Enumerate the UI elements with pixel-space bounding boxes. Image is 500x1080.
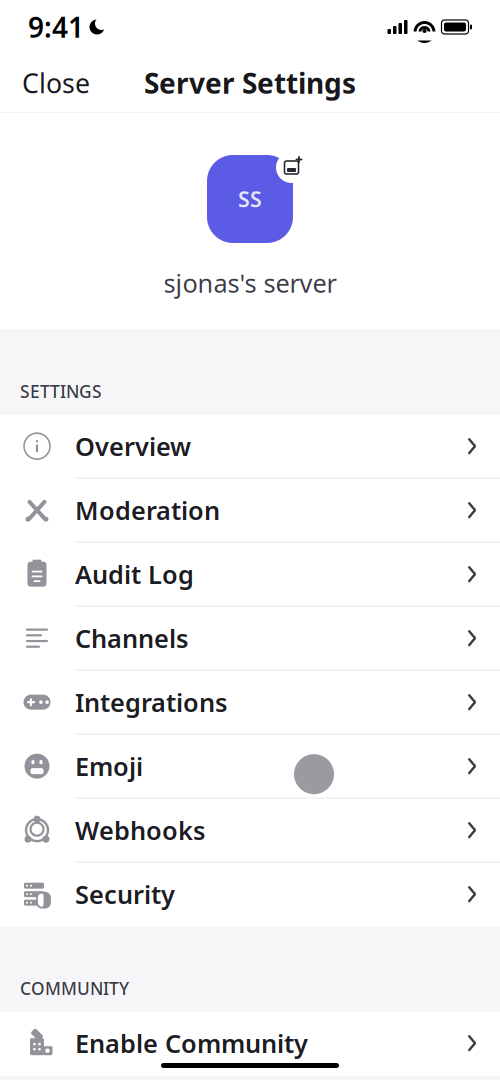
button[interactable]: Integrations (0, 671, 500, 735)
staticText: Enable Community (75, 1026, 308, 1060)
button[interactable]: Close (0, 53, 112, 113)
staticText: SETTINGS (20, 380, 102, 403)
staticText: SS (238, 185, 262, 213)
staticText: Server Settings (144, 64, 356, 102)
staticText: Emoji (75, 749, 143, 783)
button[interactable]: Security (0, 863, 500, 927)
button[interactable]: Moderation (0, 479, 500, 543)
staticText: Close (22, 65, 90, 101)
staticText: Integrations (75, 685, 227, 719)
button[interactable]: Emoji (0, 735, 500, 799)
button[interactable]: Overview (0, 415, 500, 479)
staticText: Security (75, 877, 175, 911)
button[interactable]: Change server icon (195, 153, 305, 245)
button[interactable]: Channels (0, 607, 500, 671)
staticText: Overview (75, 429, 191, 463)
staticText: 9:41 (28, 8, 84, 46)
staticText: COMMUNITY (20, 977, 129, 1000)
staticText: Channels (75, 621, 188, 655)
button[interactable]: Enable Community (0, 1012, 500, 1076)
staticText: Webhooks (75, 813, 205, 847)
button[interactable]: Webhooks (0, 799, 500, 863)
staticText: Audit Log (75, 557, 194, 591)
staticText: sjonas's server (163, 266, 336, 300)
button[interactable]: Audit Log (0, 543, 500, 607)
staticText: Moderation (75, 493, 220, 527)
